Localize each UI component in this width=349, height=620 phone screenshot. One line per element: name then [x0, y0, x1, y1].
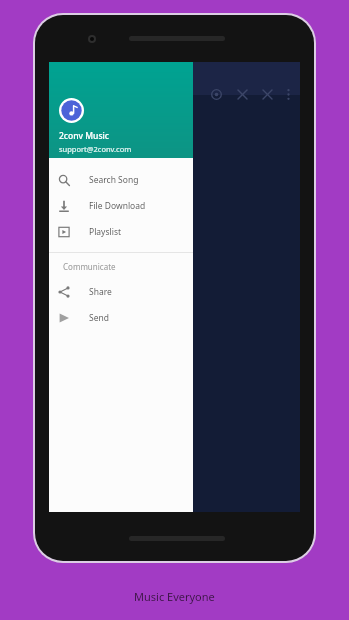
staticText: 2conv Music	[59, 130, 109, 142]
staticText: Communicate	[63, 261, 116, 272]
button[interactable]: Close	[257, 84, 277, 104]
button[interactable]: Playslist	[49, 219, 193, 245]
staticText: Search Song	[89, 174, 139, 186]
staticText: Share	[89, 286, 112, 298]
button[interactable]: Cut	[232, 84, 252, 104]
button[interactable]: More options	[278, 84, 298, 104]
button[interactable]: File Download	[49, 193, 193, 219]
staticText: Music Everyone	[134, 589, 215, 604]
button[interactable]: Search Song	[49, 167, 193, 193]
staticText: File Download	[89, 200, 146, 212]
staticText: Playslist	[89, 226, 122, 238]
staticText: Send	[89, 312, 109, 324]
button[interactable]: Record	[206, 84, 226, 104]
button[interactable]: Share	[49, 279, 193, 305]
staticText: support@2conv.com	[59, 144, 132, 154]
button[interactable]: Send	[49, 305, 193, 331]
